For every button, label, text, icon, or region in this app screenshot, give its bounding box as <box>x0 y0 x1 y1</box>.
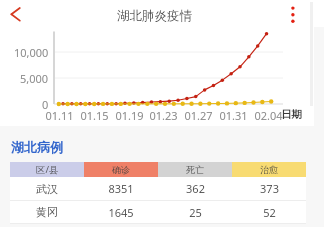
staticText: 湖北肺炎疫情 <box>117 8 192 24</box>
staticText: 湖北病例 <box>11 139 63 155</box>
staticText: 1645 <box>108 205 134 220</box>
staticText: 01.27 <box>184 108 213 123</box>
staticText: 52 <box>263 205 276 220</box>
staticText: 01.31 <box>219 108 248 123</box>
staticText: 8351 <box>108 181 134 196</box>
staticText: 区/县 <box>36 163 59 176</box>
button[interactable]: 区/县 <box>10 162 84 177</box>
staticText: 黄冈 <box>36 205 58 219</box>
staticText: 01.11 <box>45 108 74 123</box>
button[interactable]: 武汉 <box>10 177 306 200</box>
staticText: 确诊 <box>112 164 130 175</box>
staticText: 01.15 <box>80 108 109 123</box>
staticText: 25 <box>189 205 202 220</box>
staticText: 死亡 <box>186 164 204 175</box>
staticText: 武汉 <box>36 182 58 196</box>
staticText: 01.23 <box>149 108 178 123</box>
staticText: 治愈 <box>260 164 278 175</box>
button[interactable]: 黄冈 <box>10 201 306 223</box>
button[interactable]: More options <box>283 1 303 21</box>
button[interactable]: Back <box>3 1 28 26</box>
staticText: 10,000 <box>14 45 49 59</box>
staticText: 0 <box>42 97 49 111</box>
staticText: 日期 <box>281 108 302 121</box>
staticText: 5,000 <box>20 71 49 85</box>
staticText: 362 <box>186 181 205 196</box>
button[interactable]: 死亡 <box>158 162 232 177</box>
staticText: 02.04 <box>254 108 283 123</box>
button[interactable]: 确诊 <box>84 162 158 177</box>
staticText: 373 <box>260 181 279 196</box>
staticText: 01.19 <box>115 108 144 123</box>
button[interactable]: 治愈 <box>232 162 306 177</box>
